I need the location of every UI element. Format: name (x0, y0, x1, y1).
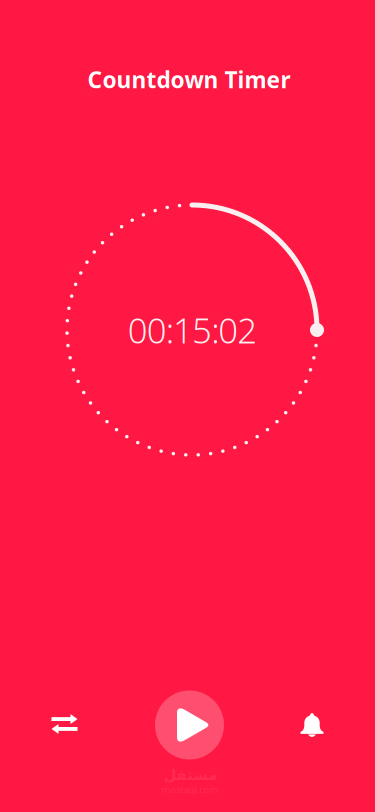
button[interactable]: Alarm (281, 694, 343, 756)
button[interactable]: Switch (33, 693, 95, 755)
staticText: 00:15:02 (128, 307, 257, 353)
staticText: مستقل (163, 766, 217, 783)
button[interactable]: Start (155, 690, 224, 759)
staticText: Countdown Timer (87, 64, 290, 94)
staticText: mostaql.com (161, 783, 218, 795)
